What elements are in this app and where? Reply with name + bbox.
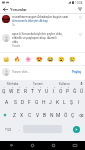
button[interactable]: Hide keyboard bbox=[0, 141, 22, 150]
button[interactable]: Ç bbox=[69, 109, 76, 121]
button[interactable]: Kullanıcı bbox=[51, 80, 77, 86]
button[interactable]: D bbox=[19, 97, 26, 109]
staticText: 2 bbox=[12, 86, 14, 88]
button[interactable]: X bbox=[18, 109, 26, 121]
button[interactable]: 0 bbox=[64, 86, 71, 97]
staticText: Yorum ekle... bbox=[12, 70, 71, 74]
button[interactable]: ayse.k Sonunda böyle bir şeyler oldu, bbox=[0, 31, 85, 52]
staticText: murathanmungan Arkadaşlar bugün saat bbox=[12, 15, 69, 19]
staticText: R bbox=[24, 88, 28, 94]
button[interactable]: Ü bbox=[78, 86, 85, 97]
staticText: 2s bbox=[12, 24, 15, 27]
staticText: , bbox=[19, 127, 20, 131]
button[interactable]: Back bbox=[0, 5, 10, 13]
button[interactable]: 9 bbox=[57, 86, 64, 97]
button[interactable]: Change keyboard bbox=[64, 141, 85, 150]
staticText: 10:04 bbox=[75, 1, 83, 5]
staticText: X bbox=[20, 112, 24, 118]
button[interactable]: A bbox=[3, 97, 11, 109]
staticText: F bbox=[28, 99, 31, 105]
button[interactable]: 😮 bbox=[56, 54, 67, 65]
staticText: Ğ bbox=[73, 88, 77, 94]
button[interactable]: V bbox=[34, 109, 41, 121]
button[interactable]: 1 bbox=[0, 86, 8, 97]
button[interactable]: ?123 bbox=[1, 125, 16, 133]
staticText: B bbox=[43, 112, 47, 118]
staticText: 😂 bbox=[47, 56, 54, 62]
staticText: 7 bbox=[47, 86, 49, 88]
button[interactable]: 😂 bbox=[45, 54, 56, 65]
staticText: Tamam bbox=[33, 82, 43, 85]
button[interactable]: H bbox=[40, 97, 47, 109]
button[interactable]: 7 bbox=[43, 86, 50, 97]
staticText: U bbox=[45, 88, 49, 94]
button[interactable]: Backspace bbox=[76, 109, 85, 121]
button[interactable]: L bbox=[61, 97, 68, 109]
button[interactable]: J bbox=[47, 97, 54, 109]
button[interactable]: G bbox=[33, 97, 40, 109]
staticText: 🌸 bbox=[25, 56, 32, 62]
button[interactable]: Like bbox=[78, 32, 83, 37]
button[interactable]: Ö bbox=[62, 109, 69, 121]
staticText: N bbox=[50, 112, 54, 118]
button[interactable]: 🌸 bbox=[23, 54, 34, 65]
button[interactable]: Paylaş bbox=[71, 68, 83, 76]
staticText: 1 bbox=[4, 86, 6, 88]
button[interactable]: B bbox=[41, 109, 48, 121]
button[interactable]: 4 bbox=[22, 86, 29, 97]
staticText: Q bbox=[2, 88, 6, 94]
button[interactable]: Z bbox=[10, 109, 18, 121]
staticText: 😢 bbox=[69, 56, 76, 62]
button[interactable]: K bbox=[54, 97, 61, 109]
button[interactable]: Recents bbox=[43, 141, 64, 150]
button[interactable]: F bbox=[26, 97, 33, 109]
staticText: #instareels #keşfet #kitap bbox=[12, 19, 48, 23]
button[interactable]: Shift bbox=[0, 109, 10, 121]
staticText: 9 bbox=[61, 86, 63, 88]
staticText: M bbox=[56, 112, 61, 118]
staticText: Kullanıcı bbox=[59, 82, 70, 85]
button[interactable]: M bbox=[55, 109, 62, 121]
button[interactable]: 8 bbox=[50, 86, 57, 97]
staticText: C bbox=[28, 112, 32, 118]
button[interactable]: Tamam bbox=[25, 80, 51, 86]
button[interactable]: Ş bbox=[68, 97, 75, 109]
button[interactable]: C bbox=[26, 109, 34, 121]
button[interactable]: 🔥 bbox=[12, 54, 23, 65]
staticText: I bbox=[53, 88, 55, 94]
staticText: . bbox=[65, 127, 66, 131]
button[interactable]: 6 bbox=[36, 86, 43, 97]
button[interactable]: Like bbox=[78, 15, 83, 20]
staticText: E bbox=[17, 88, 20, 94]
button[interactable]: 👑 bbox=[1, 54, 12, 65]
button[interactable]: Voice input bbox=[77, 80, 85, 86]
button[interactable]: Home bbox=[22, 141, 43, 150]
button[interactable]: 2 bbox=[8, 86, 15, 97]
staticText: etkinlik ve paylaşım akışı düzenli bbox=[12, 36, 57, 40]
button[interactable]: murathanmungan Arkadaşlar bugün saat bbox=[0, 14, 85, 31]
staticText: L bbox=[63, 99, 66, 105]
staticText: A bbox=[5, 99, 9, 105]
button[interactable]: 😢 bbox=[67, 54, 78, 65]
staticText: 8 bbox=[54, 86, 56, 88]
button[interactable]: Merhaba bbox=[0, 80, 25, 86]
button[interactable]: Sort comments bbox=[75, 5, 85, 13]
button[interactable]: I bbox=[75, 97, 82, 109]
staticText: 😍 bbox=[36, 56, 43, 62]
button[interactable]: Ğ bbox=[71, 86, 78, 97]
staticText: Ç bbox=[71, 112, 75, 118]
button[interactable]: S bbox=[11, 97, 19, 109]
button[interactable]: , bbox=[16, 125, 23, 133]
button[interactable]: Send bbox=[69, 125, 84, 133]
button[interactable]: 3 bbox=[15, 86, 22, 97]
staticText: K bbox=[56, 99, 60, 105]
staticText: Y bbox=[38, 88, 41, 94]
staticText: ?123 bbox=[5, 128, 12, 131]
button[interactable]: 5 bbox=[29, 86, 36, 97]
button[interactable]: N bbox=[48, 109, 55, 121]
staticText: 0 bbox=[68, 86, 70, 88]
staticText: ayse.k Sonunda böyle bir şeyler oldu, bbox=[12, 32, 63, 36]
button[interactable]: 😍 bbox=[34, 54, 45, 65]
